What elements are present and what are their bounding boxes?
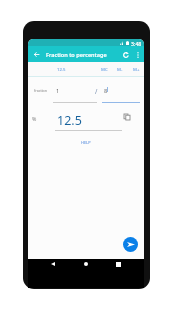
staticText: MC (101, 66, 108, 72)
staticText: 1 (56, 87, 60, 95)
staticText: % (32, 115, 37, 122)
staticText: fraction (34, 88, 48, 93)
staticText: / (95, 87, 98, 96)
button[interactable]: M+ (130, 63, 142, 74)
staticText: Fraction to percentage (46, 51, 107, 59)
staticText: HELP (81, 140, 91, 145)
staticText: 12.5 (57, 112, 82, 129)
staticText: M- (117, 66, 123, 72)
button[interactable]: More options (133, 50, 142, 59)
button[interactable]: Calculate (123, 237, 138, 252)
button[interactable]: 8 (102, 83, 140, 103)
button[interactable]: Refresh (121, 50, 130, 59)
button[interactable]: Home (84, 262, 88, 266)
staticText: 12.5 (57, 66, 66, 72)
button[interactable]: MC (98, 63, 110, 74)
button[interactable]: Copy result (121, 111, 133, 123)
button[interactable]: 12.5 (55, 109, 122, 133)
staticText: 8 (104, 87, 108, 95)
button[interactable]: 1 (53, 83, 97, 103)
button[interactable]: Navigate up (32, 50, 41, 59)
staticText: 3:48 (131, 40, 142, 47)
button[interactable]: M- (114, 63, 126, 74)
staticText: M+ (133, 66, 140, 72)
button[interactable]: Back (51, 262, 55, 266)
button[interactable]: HELP (74, 137, 98, 148)
